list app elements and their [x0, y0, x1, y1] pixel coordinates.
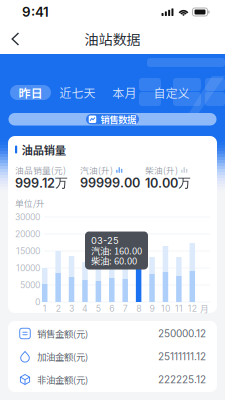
staticText: 10000 [16, 263, 40, 273]
staticText: 汽油: 160.00 [91, 244, 142, 257]
button[interactable]: 非油金额(元) [8, 368, 217, 391]
staticText: 月 [200, 302, 209, 315]
staticText: 油站数据 [84, 29, 140, 49]
staticText: 加油金额(元) [37, 350, 88, 363]
button[interactable]: 近七天 [51, 85, 104, 100]
staticText: 10.00万 [145, 175, 191, 191]
button[interactable]: 昨日 [10, 85, 51, 100]
staticText: 6 [109, 303, 114, 314]
staticText: 5 [96, 303, 101, 314]
staticText: 2 [56, 303, 61, 314]
staticText: 柴油: 60.00 [91, 254, 137, 267]
staticText: 油品销量 [22, 141, 66, 158]
staticText: 销售数据 [100, 112, 136, 126]
button[interactable]: 自定义 [145, 85, 198, 100]
staticText: 油品销量(元) [15, 164, 66, 176]
staticText: 9 [149, 303, 154, 314]
staticText: 20000 [15, 229, 40, 239]
staticText: 03-25 [91, 235, 119, 246]
staticText: 5000 [20, 280, 40, 290]
staticText: 0 [35, 297, 40, 307]
staticText: 222225.12 [158, 373, 206, 386]
staticText: 11 [175, 303, 183, 314]
staticText: 99999.00 [80, 175, 140, 191]
staticText: 250000.12 [158, 327, 206, 340]
staticText: 3 [69, 303, 74, 314]
button[interactable]: 加油金额(元) [8, 345, 217, 368]
button[interactable]: 销售数据 [86, 114, 139, 124]
staticText: 4 [82, 303, 88, 314]
button[interactable]: Back [0, 24, 31, 54]
staticText: 999.12万 [15, 175, 68, 191]
staticText: 10 [161, 303, 170, 314]
staticText: 近七天 [59, 84, 95, 101]
staticText: 单位/升 [15, 197, 45, 209]
staticText: 自定义 [153, 84, 189, 101]
button[interactable]: 本月 [104, 85, 145, 100]
staticText: 12 [188, 303, 197, 314]
staticText: 非油金额(元) [37, 373, 88, 386]
staticText: 25111111.12 [158, 350, 206, 363]
staticText: 汽油(升) [80, 164, 113, 176]
staticText: 柴油(升) [145, 164, 178, 176]
staticText: 7 [123, 303, 128, 314]
staticText: 15000 [16, 246, 40, 256]
staticText: 昨日 [18, 84, 42, 101]
staticText: 30000 [15, 212, 40, 222]
button[interactable]: 销售金额(元) [8, 322, 217, 345]
staticText: 9:41 [22, 4, 49, 20]
staticText: 销售金额(元) [37, 327, 88, 340]
staticText: 8 [136, 303, 141, 314]
staticText: 本月 [112, 84, 136, 101]
staticText: 1 [43, 303, 47, 314]
